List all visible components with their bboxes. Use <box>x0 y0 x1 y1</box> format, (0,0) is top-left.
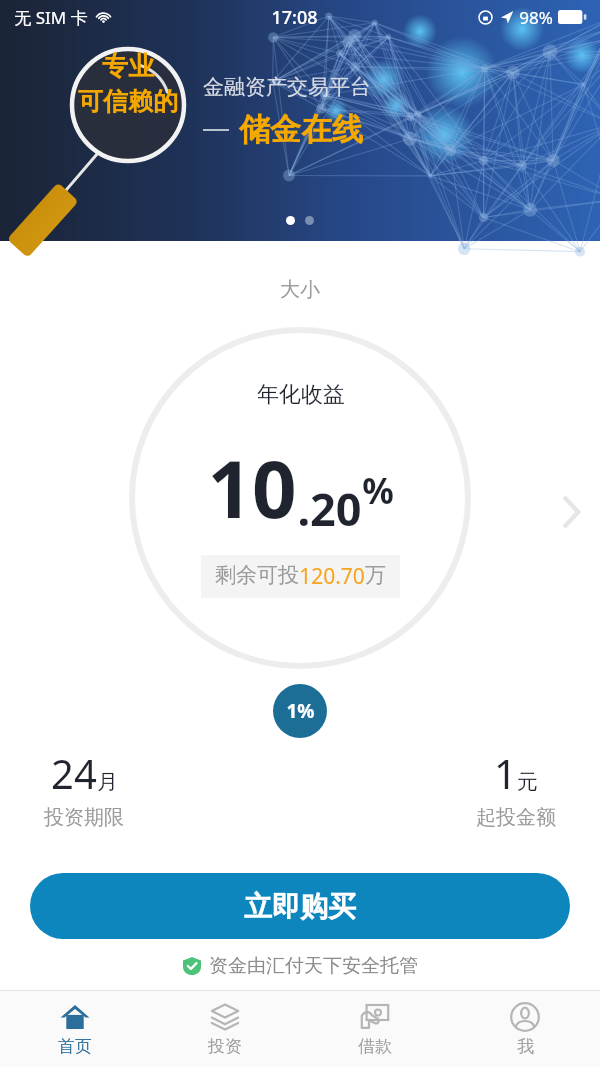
staticText: 无 SIM 卡 <box>14 6 88 29</box>
staticText: 起投金额 <box>476 805 556 830</box>
staticText: 首页 <box>58 1036 92 1057</box>
staticText: 资金由汇付天下安全托管 <box>209 954 418 978</box>
staticText: 大小 <box>280 277 320 302</box>
staticText: 借款 <box>358 1036 392 1057</box>
staticText: 年化收益 <box>257 381 345 409</box>
button[interactable]: 借款 <box>300 991 450 1067</box>
staticText: 投资期限 <box>44 805 124 830</box>
staticText: 金融资产交易平台 <box>203 74 371 100</box>
button[interactable]: 我 <box>450 991 600 1067</box>
staticText: 1% <box>286 698 315 724</box>
staticText: 98% <box>519 6 553 29</box>
staticText: 储金在线 <box>239 110 363 149</box>
staticText: 120.70 <box>299 562 365 591</box>
staticText: 24 <box>51 746 97 800</box>
staticText: 投资 <box>208 1036 242 1057</box>
staticText: 可信赖的 <box>78 86 178 117</box>
staticText: 元 <box>517 769 538 795</box>
button[interactable]: 首页 <box>0 991 150 1067</box>
staticText: 万 <box>365 562 386 588</box>
staticText: 月 <box>97 769 118 795</box>
button[interactable]: 投资 <box>150 991 300 1067</box>
staticText: 专业 <box>102 50 154 83</box>
staticText: 我 <box>517 1036 534 1057</box>
staticText: .20 <box>297 478 362 539</box>
button[interactable]: Next product <box>560 493 584 531</box>
staticText: 剩余可投 <box>215 562 299 588</box>
staticText: 1 <box>494 746 517 800</box>
staticText: 17:08 <box>271 5 318 30</box>
staticText: % <box>362 467 394 515</box>
staticText: 10 <box>207 435 297 541</box>
button[interactable]: 立即购买 <box>30 873 570 939</box>
staticText: 立即购买 <box>244 889 356 924</box>
